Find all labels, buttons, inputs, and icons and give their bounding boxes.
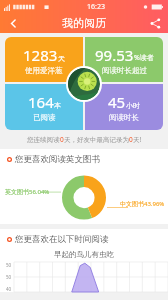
staticText: 阅读时长超过 [102, 66, 147, 75]
staticText: 天，好友中最高记录为 [64, 136, 129, 144]
staticText: 0 [60, 135, 64, 144]
staticText: 我的阅历 [62, 16, 106, 30]
staticText: 本 [54, 101, 61, 110]
button[interactable]: 99.53 [85, 37, 163, 82]
staticText: 使用爱洋葱 [25, 66, 63, 75]
staticText: 阅读时长 [109, 113, 139, 122]
staticText: 0 [129, 135, 133, 144]
staticText: 天! [133, 135, 142, 144]
button[interactable]: 45 [85, 84, 163, 130]
staticText: 您连续阅读 [27, 136, 60, 144]
staticText: 16:23 [87, 2, 105, 12]
staticText: 小时 [126, 101, 140, 110]
button[interactable]: 1283 [5, 37, 83, 82]
staticText: 50 [6, 274, 12, 280]
staticText: 您更喜欢阅读英文图书 [15, 154, 100, 165]
button[interactable]: Profile avatar [68, 68, 100, 100]
staticText: 已阅读 [33, 113, 56, 122]
staticText: 50 [6, 262, 12, 268]
button[interactable]: Back [4, 14, 22, 32]
staticText: 您更喜欢在以下时间阅读 [15, 234, 109, 245]
button[interactable]: 164 [5, 84, 83, 130]
staticText: 164 [28, 92, 54, 112]
staticText: 英文图书56.04% [5, 188, 50, 196]
staticText: 45 [108, 92, 126, 112]
staticText: 早起的鸟儿有虫吃 [0, 250, 168, 259]
staticText: 40 [6, 286, 12, 292]
staticText: 99.53 [95, 45, 134, 65]
staticText: 中文图书43.96% [120, 200, 165, 208]
staticText: 天 [58, 54, 65, 63]
staticText: %读者 [134, 53, 154, 63]
button[interactable]: Share [146, 14, 164, 32]
staticText: 1283 [23, 45, 58, 65]
